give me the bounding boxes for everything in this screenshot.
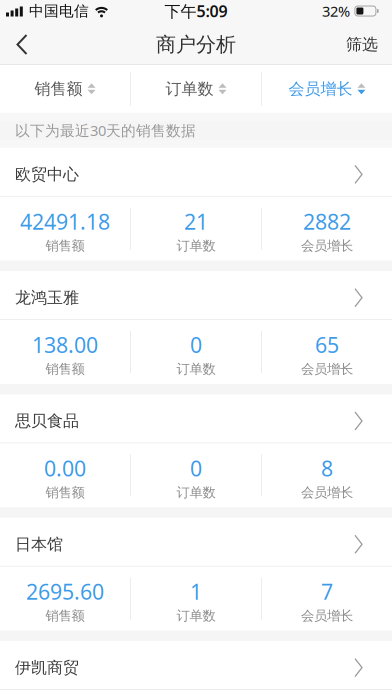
staticText: 以下为最近30天的销售数据 <box>15 121 196 140</box>
staticText: 会员增长 <box>301 484 353 501</box>
staticText: 思贝食品 <box>15 411 79 431</box>
staticText: 会员增长 <box>288 79 352 99</box>
staticText: 订单数 <box>165 79 213 99</box>
staticText: 0 <box>190 331 202 359</box>
staticText: 订单数 <box>176 361 215 377</box>
staticText: 138.00 <box>32 331 98 359</box>
staticText: 会员增长 <box>301 361 353 377</box>
staticText: 0 <box>190 454 202 482</box>
button[interactable]: 思贝食品 <box>0 394 392 443</box>
button[interactable]: 龙鸿玉雅 <box>0 271 392 319</box>
staticText: 1 <box>190 577 202 605</box>
staticText: 中国电信 <box>29 2 89 20</box>
staticText: 日本馆 <box>15 534 63 554</box>
staticText: 65 <box>315 331 339 359</box>
staticText: 32% <box>322 1 350 21</box>
staticText: 0.00 <box>44 454 86 482</box>
staticText: 8 <box>321 454 333 482</box>
button[interactable]: Back <box>0 22 42 64</box>
staticText: 筛选 <box>346 35 378 54</box>
staticText: 42491.18 <box>20 207 110 236</box>
staticText: 销售额 <box>46 238 85 254</box>
button[interactable]: 销售额 <box>0 65 130 113</box>
staticText: 欧贸中心 <box>15 165 79 184</box>
button[interactable]: 会员增长 <box>262 65 392 113</box>
staticText: 商户分析 <box>156 32 236 57</box>
staticText: 订单数 <box>176 484 215 501</box>
staticText: 21 <box>184 207 208 236</box>
button[interactable]: 日本馆 <box>0 518 392 566</box>
staticText: 销售额 <box>46 608 85 624</box>
staticText: 销售额 <box>46 361 85 377</box>
staticText: 订单数 <box>176 608 215 624</box>
staticText: 2695.60 <box>26 577 104 605</box>
staticText: 会员增长 <box>301 608 353 624</box>
staticText: 下午5:09 <box>164 0 227 22</box>
staticText: 7 <box>321 577 333 605</box>
staticText: 龙鸿玉雅 <box>15 288 79 308</box>
staticText: 销售额 <box>46 484 85 501</box>
button[interactable]: 欧贸中心 <box>0 148 392 196</box>
staticText: 销售额 <box>35 79 83 99</box>
button[interactable]: 伊凯商贸 <box>0 641 392 689</box>
staticText: 伊凯商贸 <box>15 658 79 677</box>
button[interactable]: 筛选 <box>334 22 392 64</box>
staticText: 2882 <box>303 207 351 236</box>
button[interactable]: 订单数 <box>131 65 261 113</box>
staticText: 订单数 <box>176 238 215 254</box>
staticText: 会员增长 <box>301 238 353 254</box>
